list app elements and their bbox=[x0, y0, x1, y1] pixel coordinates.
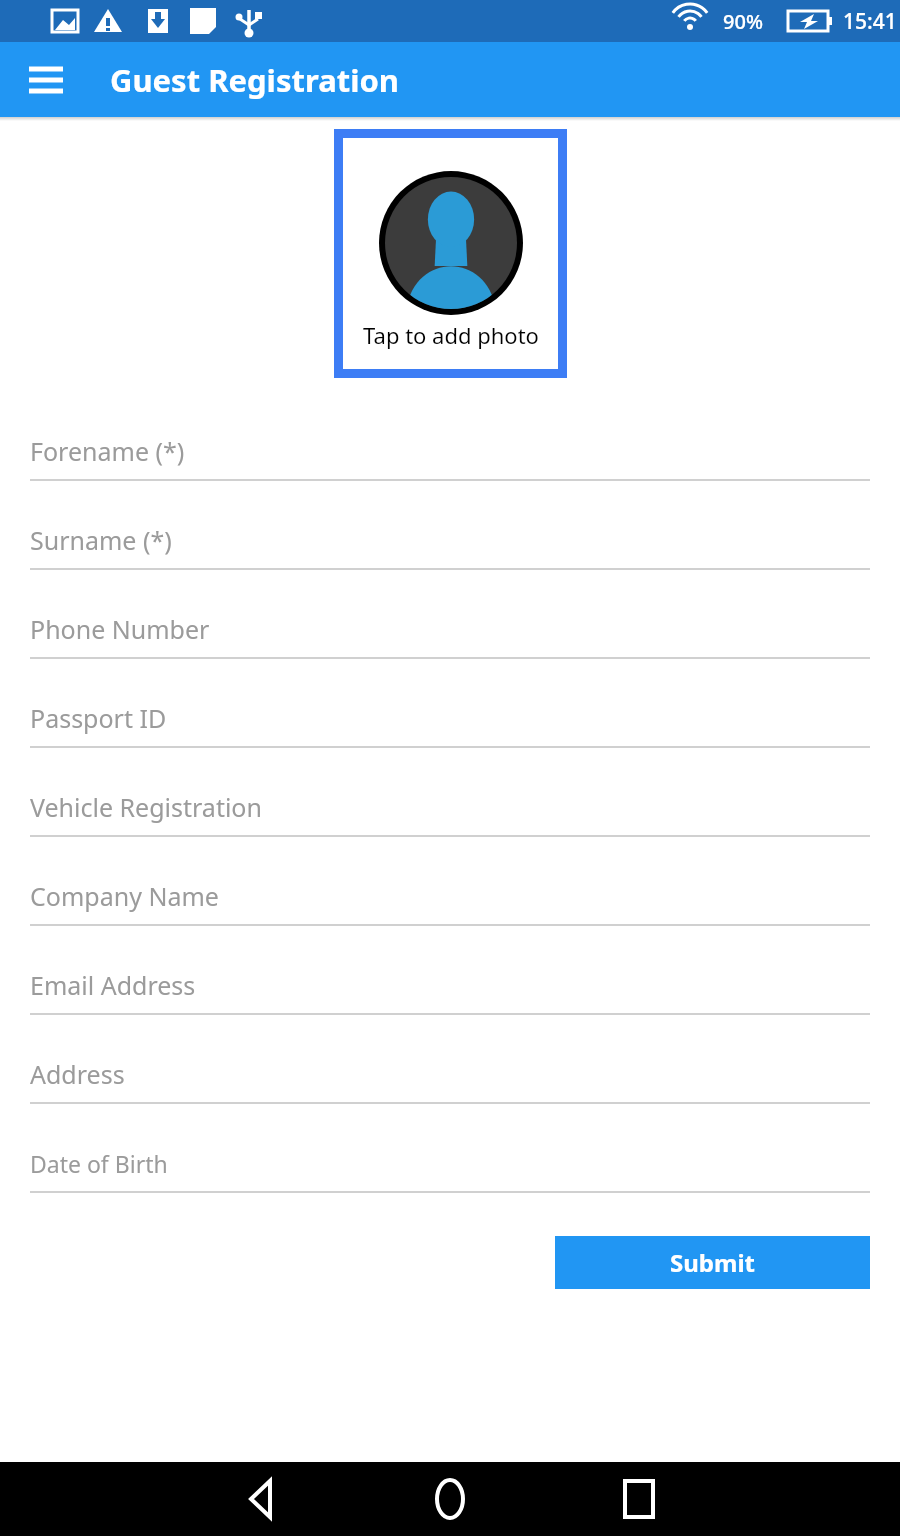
staticText: 90% bbox=[723, 8, 763, 35]
staticText: Tap to add photo bbox=[363, 320, 539, 350]
staticText: Guest Registration bbox=[110, 59, 399, 101]
button[interactable]: Company Name bbox=[30, 868, 870, 957]
staticText: Vehicle Registration bbox=[30, 790, 262, 824]
button[interactable]: Recent apps bbox=[604, 1464, 674, 1534]
button[interactable]: Date of Birth bbox=[30, 1135, 870, 1224]
button[interactable]: Address bbox=[30, 1046, 870, 1135]
staticText: Passport ID bbox=[30, 701, 167, 735]
staticText: 15:41 bbox=[843, 7, 897, 36]
staticText: Phone Number bbox=[30, 612, 210, 646]
button[interactable]: Back bbox=[226, 1464, 296, 1534]
staticText: Company Name bbox=[30, 879, 219, 913]
staticText: Surname (*) bbox=[30, 523, 172, 557]
button[interactable]: Open navigation menu bbox=[22, 56, 70, 104]
button[interactable]: Surname (*) bbox=[30, 512, 870, 601]
staticText: Email Address bbox=[30, 968, 196, 1002]
staticText: Address bbox=[30, 1057, 125, 1091]
staticText: Date of Birth bbox=[30, 1148, 168, 1179]
button[interactable]: Submit bbox=[555, 1236, 870, 1289]
button[interactable]: Home bbox=[415, 1464, 485, 1534]
button[interactable]: Forename (*) bbox=[30, 423, 870, 512]
button[interactable]: Vehicle Registration bbox=[30, 779, 870, 868]
staticText: Forename (*) bbox=[30, 434, 185, 468]
button[interactable]: Tap to add photo bbox=[343, 138, 558, 369]
staticText: Submit bbox=[670, 1246, 755, 1279]
button[interactable]: Passport ID bbox=[30, 690, 870, 779]
button[interactable]: Phone Number bbox=[30, 601, 870, 690]
button[interactable]: Email Address bbox=[30, 957, 870, 1046]
